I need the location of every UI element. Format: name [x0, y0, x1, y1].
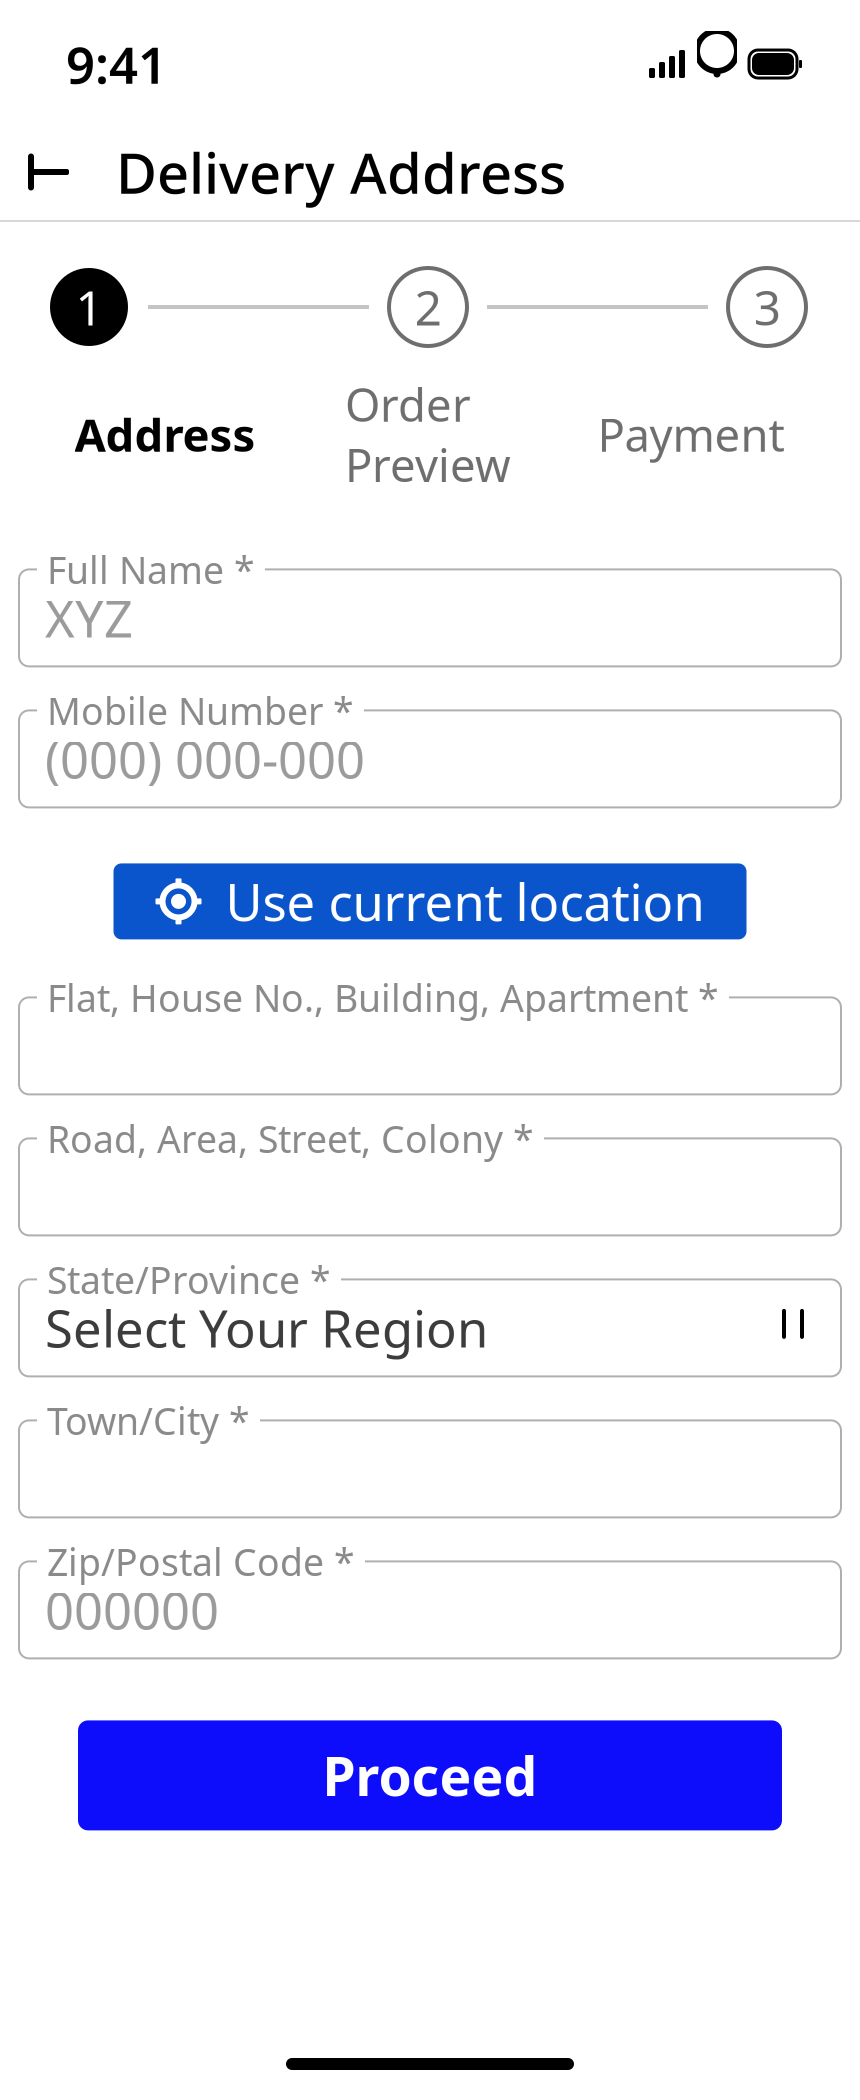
- button[interactable]: Select Your Region: [19, 1279, 841, 1376]
- staticText: Flat, House No., Building, Apartment *: [47, 973, 719, 1022]
- staticText: Delivery Address: [116, 135, 566, 209]
- button[interactable]: Back: [6, 134, 82, 210]
- staticText: (000) 000-000: [45, 725, 365, 793]
- staticText: Order Preview: [345, 374, 511, 494]
- staticText: State/Province *: [47, 1255, 331, 1304]
- staticText: 3: [753, 275, 780, 339]
- staticText: Select Your Region: [45, 1294, 488, 1362]
- staticText: 9:41: [66, 30, 167, 98]
- staticText: Proceed: [322, 1740, 537, 1811]
- staticText: Full Name *: [47, 545, 255, 594]
- staticText: Payment: [597, 404, 784, 464]
- staticText: 1: [75, 275, 102, 339]
- staticText: Road, Area, Street, Colony *: [47, 1114, 534, 1163]
- staticText: Use current location: [225, 868, 704, 935]
- staticText: XYZ: [45, 584, 133, 652]
- button[interactable]: Use current location: [113, 863, 746, 939]
- staticText: 000000: [45, 1576, 219, 1644]
- staticText: Zip/Postal Code *: [47, 1537, 355, 1586]
- staticText: 2: [414, 275, 441, 339]
- staticText: Town/City *: [47, 1396, 250, 1445]
- staticText: Mobile Number *: [47, 686, 354, 735]
- button[interactable]: Proceed: [78, 1720, 782, 1830]
- staticText: Address: [74, 404, 255, 464]
